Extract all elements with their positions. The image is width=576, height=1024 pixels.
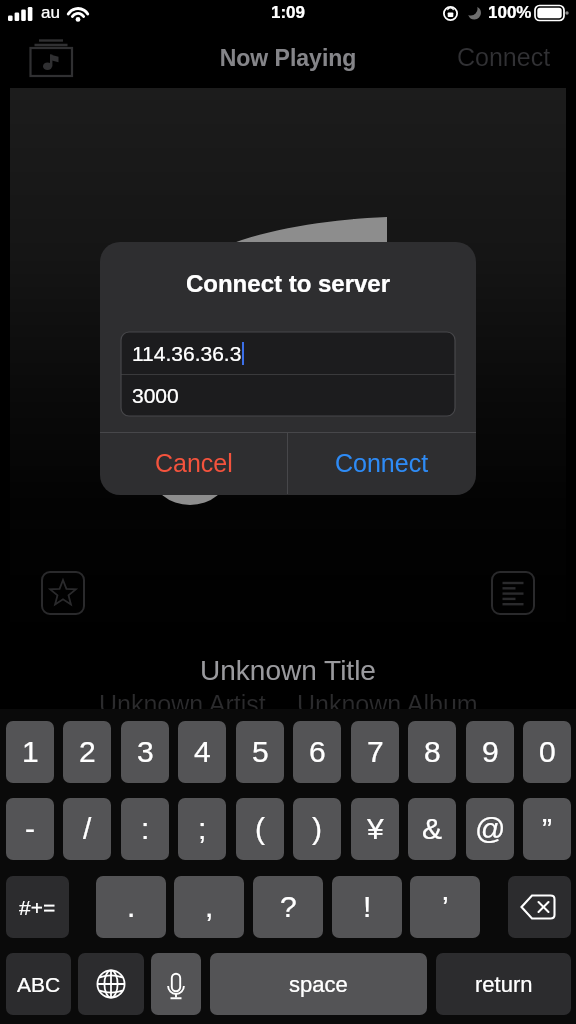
button[interactable]: space (210, 953, 427, 1015)
button[interactable]: / (63, 798, 111, 860)
staticText: Connect (457, 43, 551, 71)
staticText: 7 (367, 735, 384, 769)
staticText: space (289, 972, 348, 997)
button[interactable]: Connect (449, 39, 559, 75)
staticText: 114.36.36.3 (132, 342, 242, 365)
staticText: au (41, 3, 60, 22)
staticText: 1 (22, 735, 39, 769)
staticText: Unknown Artist (99, 690, 266, 718)
button[interactable]: 5 (236, 721, 284, 783)
button[interactable]: Favorite (42, 572, 84, 614)
button[interactable]: ” (523, 798, 571, 860)
staticText: 0 (539, 735, 556, 769)
button[interactable]: Cancel (100, 432, 287, 494)
staticText: / (83, 812, 92, 846)
staticText: ¥ (367, 812, 384, 846)
staticText: 1:09 (0, 3, 576, 22)
staticText: 3000 (132, 384, 179, 407)
button[interactable]: #+= (6, 876, 69, 938)
button[interactable]: 7 (351, 721, 399, 783)
staticText: 5 (252, 735, 269, 769)
staticText: Connect (335, 449, 429, 477)
button[interactable]: Queue (492, 572, 534, 614)
button[interactable]: ABC (6, 953, 71, 1015)
staticText: ; (198, 812, 207, 846)
button[interactable]: return (436, 953, 571, 1015)
staticText: 4 (194, 735, 211, 769)
button[interactable]: - (6, 798, 54, 860)
staticText: : (141, 812, 150, 846)
staticText: 6 (309, 735, 326, 769)
button[interactable]: 8 (408, 721, 456, 783)
staticText: ’ (442, 890, 449, 924)
button[interactable]: @ (466, 798, 514, 860)
button[interactable]: ’ (410, 876, 480, 938)
button[interactable]: & (408, 798, 456, 860)
staticText: #+= (19, 896, 56, 919)
button[interactable]: 3 (121, 721, 169, 783)
staticText: 8 (424, 735, 441, 769)
button[interactable]: 4 (178, 721, 226, 783)
button[interactable]: , (174, 876, 244, 938)
button[interactable]: : (121, 798, 169, 860)
staticText: & (422, 812, 443, 846)
staticText: @ (475, 812, 506, 846)
staticText: Unknown Title (0, 655, 576, 686)
staticText: 100% (488, 3, 532, 22)
staticText: Unknown Album (297, 690, 478, 718)
button[interactable]: . (96, 876, 166, 938)
staticText: 3 (137, 735, 154, 769)
staticText: Connect to server (100, 270, 476, 297)
staticText: ( (255, 812, 265, 846)
staticText: . (127, 890, 136, 924)
button[interactable]: 2 (63, 721, 111, 783)
staticText: - (25, 812, 35, 846)
staticText: ” (542, 812, 552, 846)
staticText: Now Playing (0, 45, 576, 71)
button[interactable]: 1 (6, 721, 54, 783)
button[interactable]: Backspace (508, 876, 571, 938)
button[interactable]: ) (293, 798, 341, 860)
staticText: 2 (79, 735, 96, 769)
button[interactable]: ( (236, 798, 284, 860)
button[interactable]: Library (24, 36, 76, 80)
staticText: return (475, 972, 533, 997)
button[interactable]: ! (332, 876, 402, 938)
staticText: ? (280, 890, 297, 924)
staticText: ) (312, 812, 322, 846)
button[interactable]: Connect (288, 432, 476, 494)
button[interactable]: 6 (293, 721, 341, 783)
button[interactable]: ¥ (351, 798, 399, 860)
staticText: ABC (17, 973, 61, 996)
button[interactable]: Dictate (151, 953, 201, 1015)
staticText: 9 (482, 735, 499, 769)
button[interactable]: 9 (466, 721, 514, 783)
button[interactable]: ; (178, 798, 226, 860)
staticText: Cancel (155, 449, 233, 477)
staticText: , (205, 890, 214, 924)
staticText: ! (363, 890, 372, 924)
button[interactable]: 0 (523, 721, 571, 783)
button[interactable]: Change keyboard (78, 953, 144, 1015)
button[interactable]: ? (253, 876, 323, 938)
